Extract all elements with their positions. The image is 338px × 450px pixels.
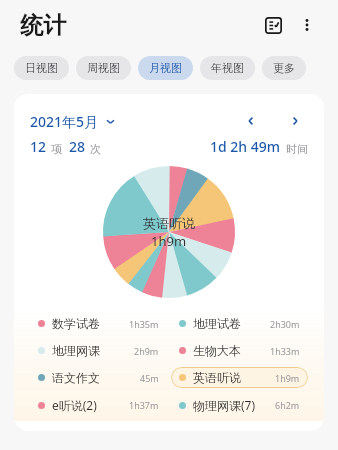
staticText: 项 xyxy=(51,142,62,156)
button[interactable]: 地理试卷 xyxy=(171,313,308,334)
button[interactable]: 年视图 xyxy=(200,56,255,80)
staticText: 地理网课 xyxy=(52,343,100,358)
staticText: 2021年5月 xyxy=(30,112,99,131)
staticText: 1h35m xyxy=(129,318,159,330)
staticText: 6h2m xyxy=(275,399,300,411)
button[interactable]: 2021年5月 xyxy=(30,110,116,133)
button[interactable]: Task list xyxy=(256,8,290,42)
staticText: 语文作文 xyxy=(52,370,100,385)
button[interactable]: More options xyxy=(290,8,324,42)
staticText: 2h30m xyxy=(270,318,300,330)
staticText: 日视图 xyxy=(25,61,58,75)
button[interactable]: 英语听说 xyxy=(171,367,308,388)
staticText: 年视图 xyxy=(211,61,244,75)
staticText: 12 xyxy=(30,137,47,156)
staticText: 周视图 xyxy=(87,61,120,75)
staticText: 月视图 xyxy=(149,61,182,75)
staticText: 地理试卷 xyxy=(193,316,241,331)
staticText: 更多 xyxy=(273,61,295,75)
staticText: 数学试卷 xyxy=(52,316,100,331)
button[interactable]: 地理网课 xyxy=(30,340,167,361)
button[interactable]: 数学试卷 xyxy=(30,313,167,334)
button[interactable]: 物理网课(7) xyxy=(171,394,308,416)
staticText: 统计 xyxy=(20,11,66,40)
button[interactable]: 语文作文 xyxy=(30,367,167,388)
staticText: e听说(2) xyxy=(52,397,97,413)
button[interactable]: Previous xyxy=(238,108,264,134)
button[interactable]: 日视图 xyxy=(14,56,69,80)
staticText: 2h9m xyxy=(134,345,159,357)
staticText: 次 xyxy=(90,142,101,156)
button[interactable]: 更多 xyxy=(262,56,306,80)
button[interactable]: 月视图 xyxy=(138,56,193,80)
staticText: 45m xyxy=(140,372,159,384)
staticText: 1d 2h 49m xyxy=(210,137,281,156)
button[interactable]: 周视图 xyxy=(76,56,131,80)
staticText: 1h9m xyxy=(151,232,187,250)
staticText: 1h33m xyxy=(270,345,300,357)
staticText: 生物大本 xyxy=(193,343,241,358)
staticText: 28 xyxy=(69,137,86,156)
staticText: 时间 xyxy=(286,142,308,156)
staticText: 1h9m xyxy=(275,372,300,384)
button[interactable]: e听说(2) xyxy=(30,394,167,416)
staticText: 物理网课(7) xyxy=(193,397,256,413)
staticText: 英语听说 xyxy=(193,370,241,385)
button[interactable]: Next xyxy=(282,108,308,134)
button[interactable]: 生物大本 xyxy=(171,340,308,361)
staticText: 英语听说 xyxy=(143,215,195,231)
staticText: 1h37m xyxy=(129,399,159,411)
